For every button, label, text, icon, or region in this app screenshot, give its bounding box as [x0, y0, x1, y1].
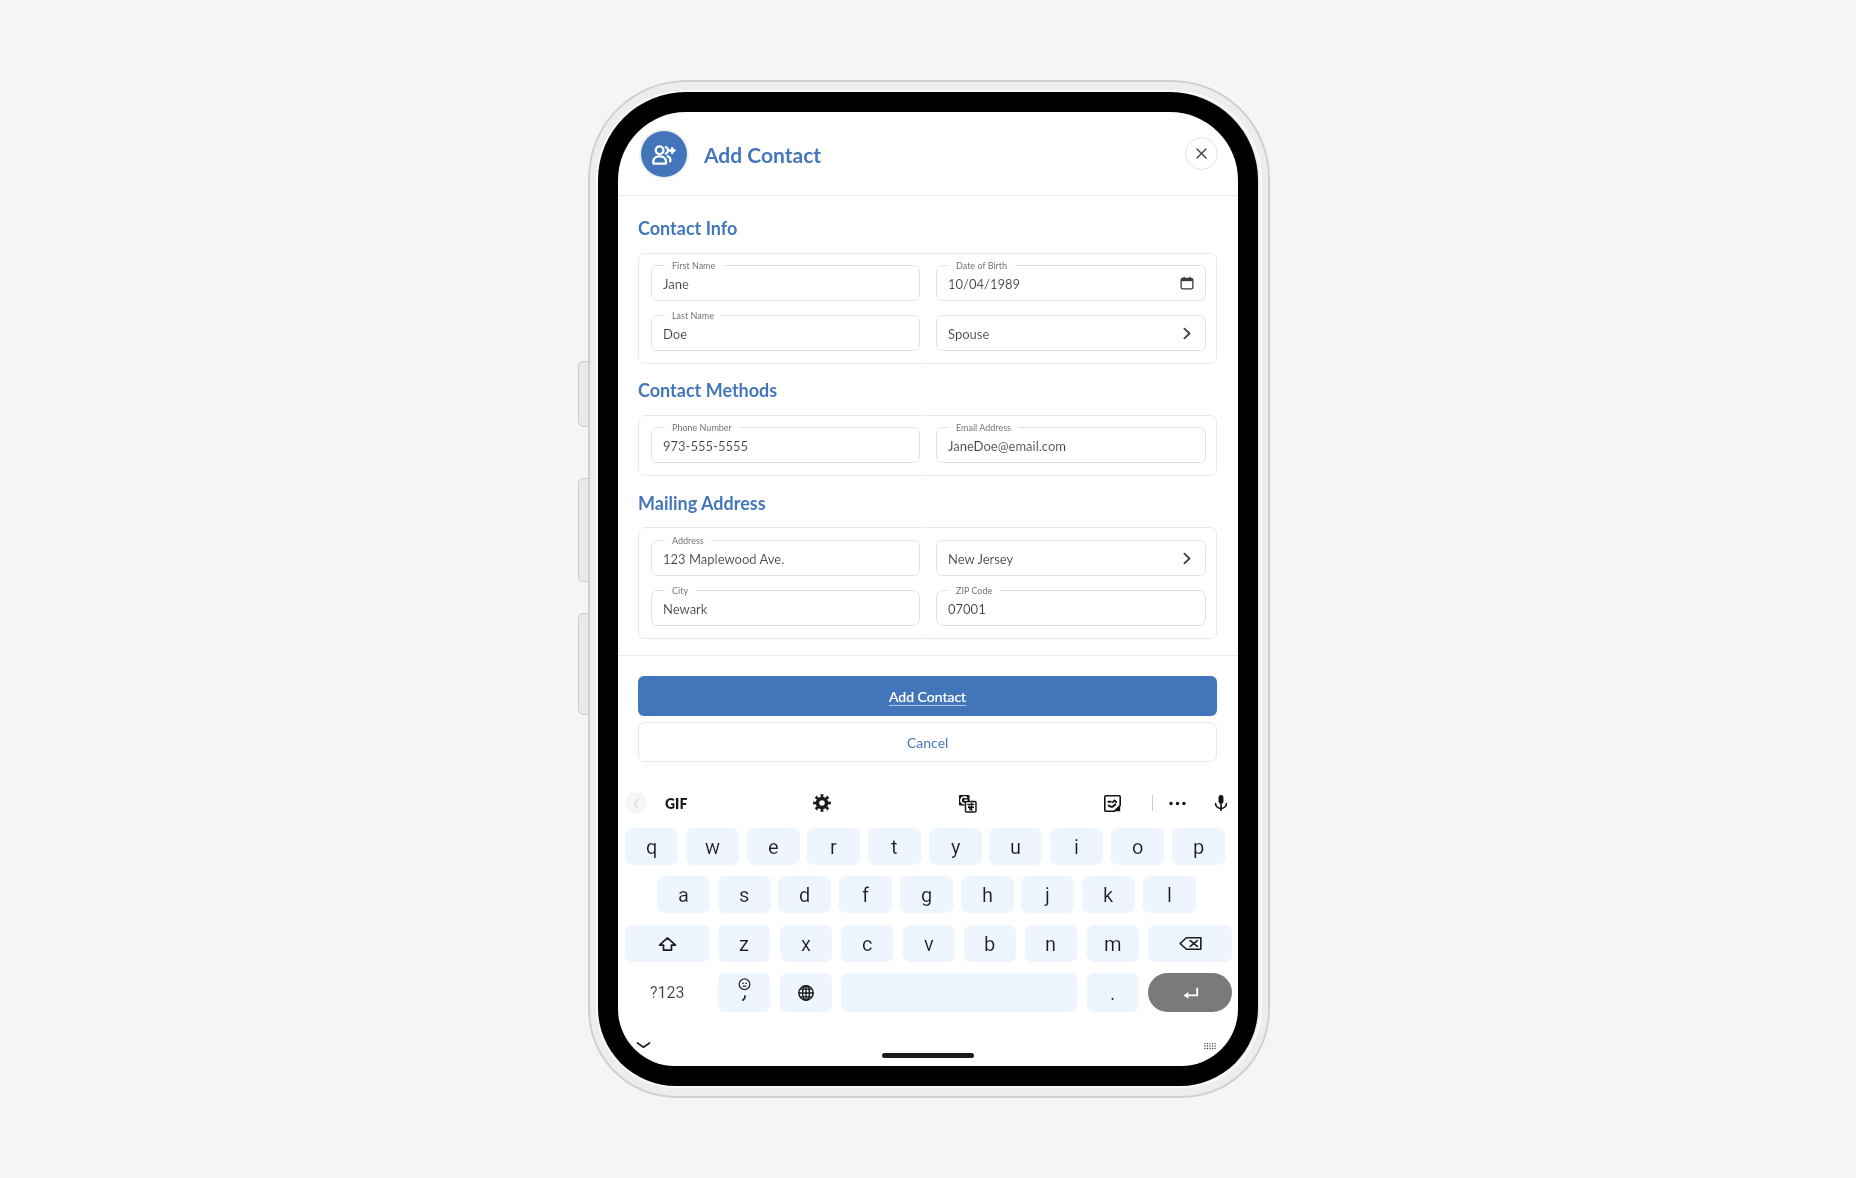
- button[interactable]: [936, 590, 1206, 626]
- staticText: u: [1010, 835, 1022, 858]
- staticText: d: [799, 883, 811, 906]
- button[interactable]: [651, 540, 920, 576]
- staticText: Add Contact: [889, 688, 967, 705]
- button[interactable]: Cancel: [638, 722, 1217, 762]
- button[interactable]: Enter: [1148, 973, 1232, 1012]
- staticText: Mailing Address: [638, 492, 766, 514]
- staticText: Cancel: [907, 734, 949, 751]
- staticText: Date of Birth: [956, 260, 1008, 271]
- staticText: Contact Info: [638, 217, 738, 239]
- staticText: City: [672, 585, 689, 596]
- button[interactable]: Voice input: [1207, 789, 1235, 817]
- staticText: m: [1104, 932, 1122, 955]
- button[interactable]: k: [1082, 876, 1135, 913]
- button[interactable]: GIF: [665, 791, 688, 815]
- staticText: Email Address: [956, 422, 1011, 433]
- staticText: f: [862, 883, 869, 906]
- staticText: p: [1193, 835, 1205, 858]
- staticText: k: [1103, 883, 1114, 906]
- button[interactable]: p: [1172, 828, 1225, 865]
- staticText: New Jersey: [948, 551, 1014, 567]
- staticText: .: [1110, 981, 1116, 1004]
- button[interactable]: [651, 315, 920, 351]
- staticText: e: [768, 835, 779, 858]
- button[interactable]: o: [1111, 828, 1164, 865]
- staticText: s: [739, 883, 750, 906]
- button[interactable]: z: [718, 925, 770, 962]
- button[interactable]: Shift: [625, 925, 710, 962]
- staticText: z: [739, 932, 749, 955]
- button[interactable]: Close: [1185, 137, 1218, 170]
- staticText: Doe: [663, 326, 688, 342]
- button[interactable]: m: [1087, 925, 1139, 962]
- staticText: t: [891, 835, 898, 858]
- button[interactable]: u: [989, 828, 1042, 865]
- button[interactable]: j: [1021, 876, 1074, 913]
- staticText: l: [1167, 883, 1172, 906]
- button[interactable]: e: [747, 828, 800, 865]
- staticText: y: [951, 835, 961, 858]
- button[interactable]: More options: [1163, 789, 1191, 817]
- button[interactable]: d: [778, 876, 831, 913]
- button[interactable]: a: [657, 876, 710, 913]
- button[interactable]: v: [903, 925, 955, 962]
- staticText: Jane: [663, 276, 689, 292]
- button[interactable]: x: [780, 925, 832, 962]
- staticText: j: [1045, 883, 1050, 906]
- staticText: c: [862, 932, 873, 955]
- staticText: Contact Methods: [638, 379, 778, 401]
- button[interactable]: Backspace: [1148, 925, 1232, 962]
- button[interactable]: c: [841, 925, 893, 962]
- button[interactable]: w: [686, 828, 739, 865]
- button[interactable]: [651, 427, 920, 463]
- button[interactable]: Previous: [625, 792, 647, 814]
- button[interactable]: [936, 315, 1206, 351]
- staticText: h: [982, 883, 994, 906]
- button[interactable]: Hide keyboard: [636, 1037, 651, 1052]
- button[interactable]: [651, 265, 920, 301]
- staticText: Spouse: [948, 326, 990, 342]
- button[interactable]: [936, 540, 1206, 576]
- staticText: GIF: [665, 795, 688, 812]
- staticText: n: [1045, 932, 1057, 955]
- button[interactable]: h: [961, 876, 1014, 913]
- button[interactable]: n: [1025, 925, 1077, 962]
- staticText: Add Contact: [704, 142, 822, 167]
- button[interactable]: l: [1143, 876, 1196, 913]
- button[interactable]: ?123: [625, 973, 710, 1012]
- staticText: w: [705, 835, 721, 858]
- button[interactable]: Translate: [953, 789, 981, 817]
- staticText: Last Name: [672, 310, 714, 321]
- staticText: ZIP Code: [956, 585, 993, 596]
- staticText: g: [921, 883, 933, 906]
- button[interactable]: r: [807, 828, 860, 865]
- button[interactable]: q: [625, 828, 678, 865]
- button[interactable]: Add Contact: [638, 676, 1217, 716]
- staticText: b: [984, 932, 996, 955]
- button[interactable]: y: [929, 828, 982, 865]
- staticText: Newark: [663, 601, 708, 617]
- button[interactable]: f: [839, 876, 892, 913]
- button[interactable]: Emoji: [718, 973, 770, 1012]
- button[interactable]: [936, 427, 1206, 463]
- button[interactable]: g: [900, 876, 953, 913]
- button[interactable]: [936, 265, 1206, 301]
- button[interactable]: t: [868, 828, 921, 865]
- staticText: a: [678, 883, 689, 906]
- button[interactable]: Settings: [808, 789, 836, 817]
- staticText: i: [1074, 835, 1079, 858]
- button[interactable]: Stickers: [1098, 789, 1126, 817]
- button[interactable]: b: [964, 925, 1016, 962]
- button[interactable]: Change keyboard: [780, 973, 832, 1012]
- staticText: Address: [672, 535, 704, 546]
- button[interactable]: s: [718, 876, 771, 913]
- staticText: 07001: [948, 601, 986, 617]
- button[interactable]: .: [1087, 973, 1139, 1012]
- staticText: o: [1132, 835, 1144, 858]
- button[interactable]: [651, 590, 920, 626]
- staticText: v: [924, 932, 934, 955]
- button[interactable]: i: [1050, 828, 1103, 865]
- button[interactable]: Add contact: [641, 131, 687, 177]
- button[interactable]: Keyboard layout: [1204, 1039, 1216, 1050]
